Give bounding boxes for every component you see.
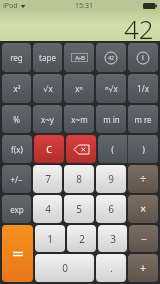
button[interactable]: tape — [33, 43, 62, 72]
button[interactable]: +/− — [2, 165, 31, 193]
button[interactable]: 1/x — [128, 74, 158, 103]
staticText: ⁿ√x — [105, 83, 118, 94]
button[interactable]: 3 — [98, 225, 127, 252]
button[interactable]: m in — [96, 105, 126, 133]
staticText: 9 — [108, 172, 114, 186]
button[interactable]: exp — [2, 195, 31, 223]
staticText: % — [13, 114, 20, 125]
staticText: x~y — [41, 114, 54, 125]
button[interactable]: 2 — [67, 225, 96, 252]
staticText: x~m — [71, 114, 88, 125]
button[interactable]: x² — [2, 74, 31, 103]
staticText: m in — [103, 114, 120, 125]
staticText: 7 — [45, 172, 51, 186]
button[interactable]: A›B — [64, 43, 94, 72]
button[interactable]: x~m — [64, 105, 94, 133]
button[interactable]: f(x) — [2, 135, 32, 163]
staticText: x² — [13, 83, 21, 94]
staticText: ( — [111, 143, 114, 155]
staticText: 4 — [45, 202, 51, 216]
staticText: f(x) — [11, 144, 23, 155]
staticText: 8 — [76, 172, 82, 186]
staticText: xⁿ — [75, 83, 83, 94]
staticText: C — [46, 143, 52, 155]
button[interactable]: ) — [128, 135, 158, 163]
button[interactable]: m re — [128, 105, 158, 133]
staticText: i — [142, 53, 144, 63]
staticText: 0 — [62, 261, 68, 275]
button[interactable]: − — [129, 225, 158, 252]
staticText: 15:31 — [75, 1, 93, 11]
button[interactable]: . — [96, 254, 126, 282]
staticText: tape — [39, 52, 56, 63]
staticText: 2 — [79, 232, 85, 246]
staticText: − — [141, 232, 147, 246]
button[interactable]: 5 — [64, 195, 94, 223]
staticText: 1/x — [137, 83, 149, 94]
button[interactable]: Answer 42 — [96, 43, 126, 72]
staticText: √x — [43, 83, 53, 94]
button[interactable]: 0 — [35, 254, 94, 282]
staticText: . — [110, 261, 113, 275]
staticText: reg — [10, 52, 23, 63]
button[interactable]: C — [34, 135, 64, 163]
button[interactable]: Backspace — [66, 135, 96, 163]
button[interactable]: ⁿ√x — [96, 74, 126, 103]
button[interactable]: 4 — [33, 195, 62, 223]
button[interactable]: 9 — [96, 165, 126, 193]
button[interactable]: % — [2, 105, 31, 133]
button[interactable]: ÷ — [128, 165, 158, 193]
button[interactable]: x~y — [33, 105, 62, 133]
staticText: 42 — [124, 11, 154, 40]
staticText: 5 — [76, 202, 82, 216]
button[interactable]: 7 — [33, 165, 62, 193]
button[interactable]: Info — [128, 43, 158, 72]
button[interactable]: 1 — [35, 225, 65, 252]
staticText: + — [140, 261, 146, 275]
button[interactable]: 6 — [96, 195, 126, 223]
button[interactable]: + — [128, 254, 158, 282]
button[interactable]: √x — [33, 74, 62, 103]
staticText: 42 — [108, 55, 114, 62]
staticText: m re — [134, 114, 152, 125]
button[interactable]: xⁿ — [64, 74, 94, 103]
staticText: +/− — [10, 174, 23, 185]
staticText: iPod — [3, 1, 18, 11]
staticText: ) — [142, 143, 145, 155]
staticText: exp — [10, 204, 24, 215]
button[interactable]: reg — [2, 43, 31, 72]
button[interactable]: × — [128, 195, 158, 223]
staticText: ÷ — [140, 172, 146, 186]
staticText: A›B — [75, 54, 85, 62]
staticText: 1 — [47, 232, 53, 246]
staticText: 6 — [108, 202, 114, 216]
staticText: 3 — [110, 232, 116, 246]
button[interactable]: 8 — [64, 165, 94, 193]
button[interactable]: Equals — [2, 225, 33, 282]
staticText: × — [140, 202, 146, 216]
button[interactable]: ( — [98, 135, 127, 163]
